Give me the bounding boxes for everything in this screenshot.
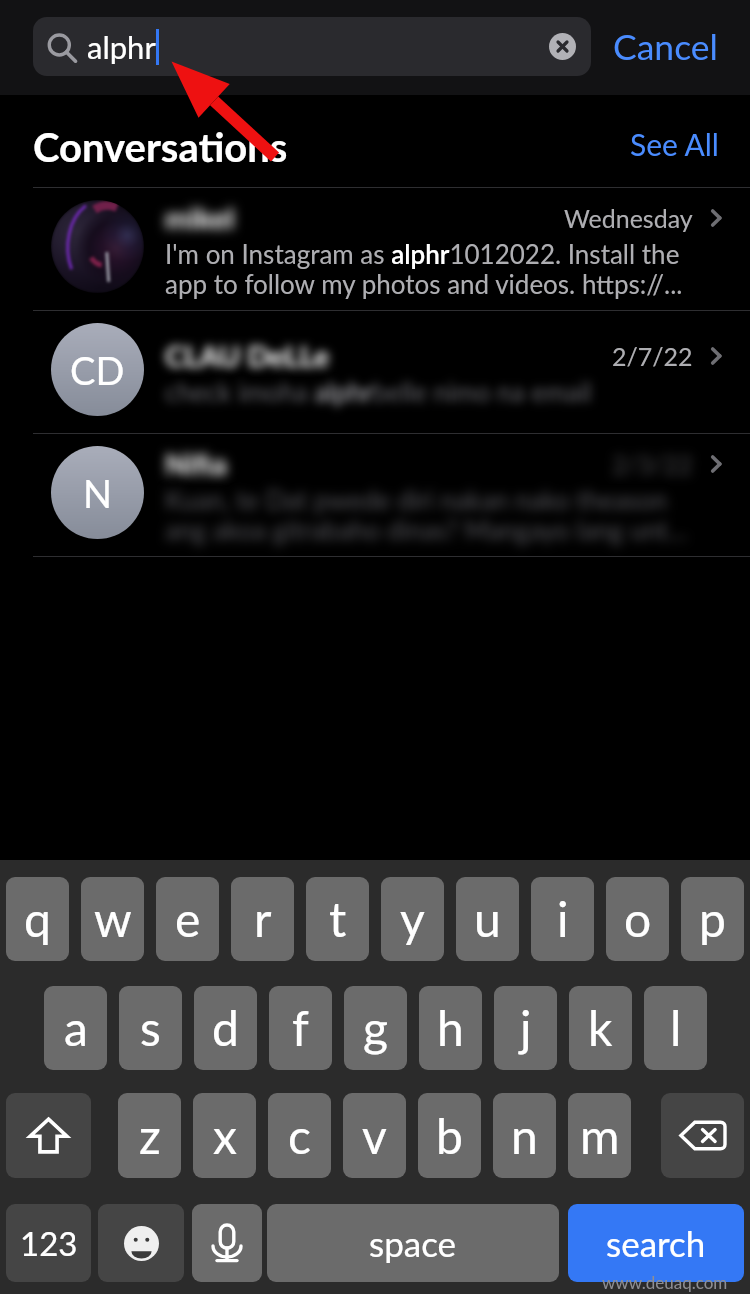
button[interactable]: j: [494, 986, 557, 1070]
staticText: 2/3/22: [612, 449, 693, 479]
button[interactable]: Clear search: [549, 33, 576, 60]
button[interactable]: Shift: [6, 1093, 91, 1178]
staticText: w: [94, 890, 132, 948]
staticText: space: [369, 1222, 457, 1264]
button[interactable]: Emoji: [98, 1204, 184, 1282]
staticText: Wednesday: [564, 203, 693, 233]
button[interactable]: Cancel: [591, 17, 740, 76]
staticText: v: [362, 1107, 387, 1165]
staticText: u: [474, 890, 501, 948]
staticText: a: [64, 999, 88, 1057]
staticText: Kuan, te Dat pwede diri nakan nako theas…: [165, 484, 690, 545]
staticText: b: [436, 1107, 463, 1165]
button[interactable]: p: [681, 877, 744, 961]
staticText: CD: [70, 347, 125, 393]
button[interactable]: N: [0, 434, 750, 557]
staticText: e: [175, 890, 201, 948]
staticText: search: [606, 1222, 706, 1264]
staticText: r: [254, 890, 272, 948]
button[interactable]: h: [419, 986, 482, 1070]
button[interactable]: Voice input: [192, 1204, 262, 1282]
button[interactable]: alphr: [33, 17, 591, 76]
button[interactable]: a: [44, 986, 107, 1070]
button[interactable]: space: [267, 1204, 559, 1282]
staticText: d: [212, 999, 239, 1057]
staticText: m: [580, 1107, 620, 1165]
button[interactable]: mikel: [0, 188, 750, 311]
staticText: k: [588, 999, 613, 1057]
other: Open conversation: [705, 452, 729, 476]
staticText: l: [670, 999, 682, 1057]
button[interactable]: o: [606, 877, 669, 961]
button[interactable]: n: [493, 1093, 556, 1178]
other: Open conversation: [705, 344, 729, 368]
button[interactable]: l: [644, 986, 707, 1070]
staticText: o: [624, 890, 652, 948]
staticText: n: [511, 1107, 538, 1165]
staticText: p: [699, 890, 726, 948]
button[interactable]: s: [119, 986, 182, 1070]
staticText: i: [557, 890, 569, 948]
button[interactable]: search: [568, 1204, 744, 1282]
staticText: f: [292, 999, 309, 1057]
staticText: N: [83, 470, 113, 516]
staticText: q: [24, 890, 51, 948]
button[interactable]: r: [231, 877, 294, 961]
staticText: www.deuaq.com: [602, 1272, 728, 1292]
staticText: j: [520, 999, 532, 1057]
staticText: t: [329, 890, 347, 948]
button[interactable]: 123: [6, 1204, 91, 1282]
staticText: mikel: [165, 200, 235, 235]
button[interactable]: q: [6, 877, 69, 961]
button[interactable]: i: [531, 877, 594, 961]
button[interactable]: See All: [630, 116, 719, 168]
staticText: 123: [20, 1223, 78, 1263]
staticText: See All: [630, 126, 719, 162]
button[interactable]: k: [569, 986, 632, 1070]
button[interactable]: y: [381, 877, 444, 961]
staticText: s: [140, 999, 161, 1057]
button[interactable]: w: [81, 877, 144, 961]
button[interactable]: v: [343, 1093, 406, 1178]
button[interactable]: u: [456, 877, 519, 961]
staticText: check imoha alphrbelle nimo na email: [165, 376, 592, 407]
button[interactable]: x: [193, 1093, 256, 1178]
button[interactable]: Backspace: [661, 1093, 744, 1178]
button[interactable]: g: [344, 986, 407, 1070]
button[interactable]: e: [156, 877, 219, 961]
staticText: Conversations: [33, 123, 288, 171]
staticText: Cancel: [613, 25, 718, 68]
staticText: 2/7/22: [612, 341, 693, 371]
button[interactable]: d: [194, 986, 257, 1070]
button[interactable]: z: [118, 1093, 181, 1178]
staticText: z: [139, 1107, 161, 1165]
staticText: g: [363, 999, 388, 1057]
staticText: x: [213, 1107, 237, 1165]
staticText: c: [288, 1107, 311, 1165]
staticText: y: [400, 890, 425, 948]
button[interactable]: c: [268, 1093, 331, 1178]
button[interactable]: t: [306, 877, 369, 961]
staticText: Nifia: [165, 446, 227, 481]
staticText: I'm on Instagram as alphr1012022. Instal…: [165, 238, 690, 299]
staticText: h: [437, 999, 464, 1057]
staticText: alphr: [87, 28, 156, 65]
button[interactable]: b: [418, 1093, 481, 1178]
button[interactable]: CD: [0, 311, 750, 434]
staticText: CLAU DeLLe: [165, 338, 330, 373]
other: Open conversation: [705, 206, 729, 230]
button[interactable]: m: [568, 1093, 631, 1178]
button[interactable]: f: [269, 986, 332, 1070]
